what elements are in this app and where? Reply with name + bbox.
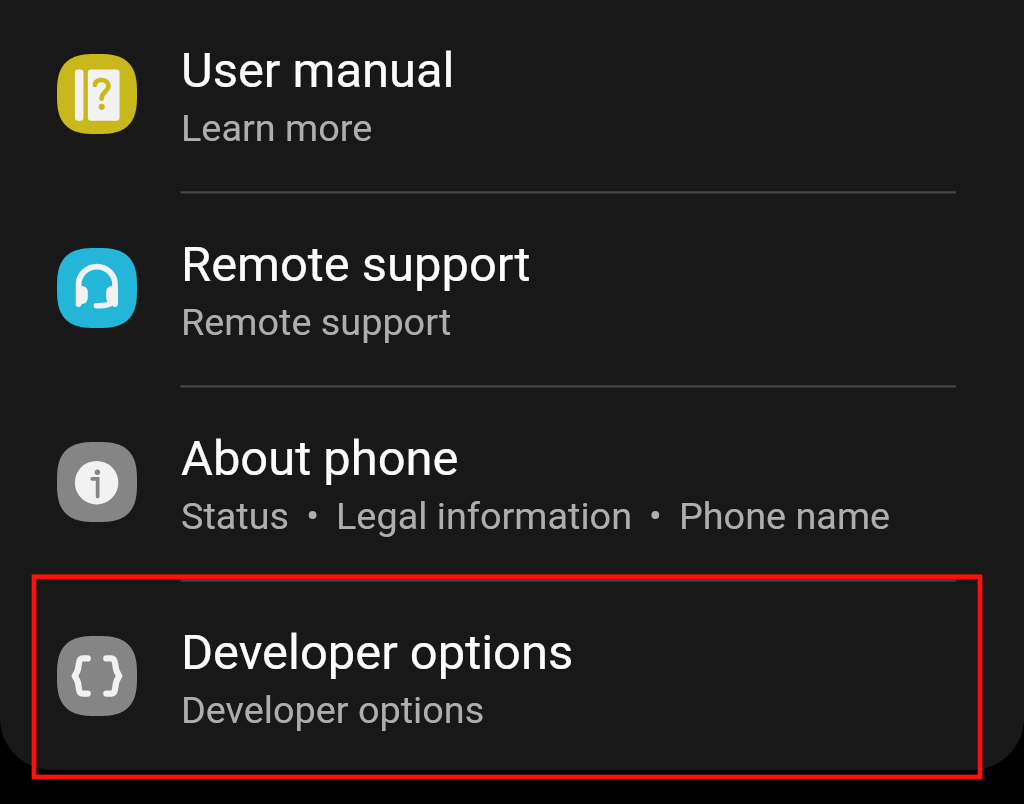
other: About phone	[57, 442, 137, 522]
staticText: Status • Legal information • Phone name	[181, 494, 891, 538]
other: Developer options	[57, 636, 137, 716]
button[interactable]: User manual	[0, 0, 1024, 194]
other: User manual	[57, 54, 137, 134]
button[interactable]: About phone	[0, 388, 1024, 582]
staticText: Learn more	[181, 106, 373, 150]
staticText: About phone	[181, 430, 459, 487]
other: Remote support	[57, 248, 137, 328]
staticText: Developer options	[181, 624, 574, 681]
staticText: Remote support	[181, 300, 452, 344]
staticText: Remote support	[181, 236, 531, 293]
staticText: User manual	[181, 42, 455, 99]
button[interactable]: Developer options	[0, 582, 1024, 776]
button[interactable]: Remote support	[0, 194, 1024, 388]
staticText: Developer options	[181, 688, 485, 732]
